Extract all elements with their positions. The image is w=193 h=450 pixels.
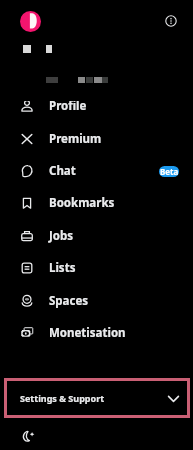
button[interactable]: Bookmarks	[0, 187, 193, 219]
staticText: Beta	[160, 166, 179, 177]
staticText: Settings & Support	[20, 392, 105, 404]
button[interactable]: Chat	[0, 155, 193, 187]
staticText: Profile	[49, 101, 87, 114]
button[interactable]: More options	[161, 11, 181, 31]
staticText: Monetisation	[49, 325, 126, 341]
button[interactable]: Monetisation	[0, 317, 193, 349]
button[interactable]: Account profile picture	[20, 11, 41, 32]
button[interactable]: Settings & Support	[4, 378, 190, 418]
staticText: Spaces	[49, 293, 89, 309]
staticText: Lists	[49, 260, 76, 276]
button[interactable]: Spaces	[0, 285, 193, 317]
staticText: Bookmarks	[49, 195, 115, 211]
button[interactable]: Dark mode	[22, 431, 34, 443]
staticText: Chat	[49, 163, 76, 179]
button[interactable]: Premium	[0, 123, 193, 155]
button[interactable]: Lists	[0, 252, 193, 284]
staticText: Jobs	[49, 228, 74, 244]
button[interactable]: Profile	[0, 101, 193, 122]
button[interactable]: Jobs	[0, 220, 193, 252]
staticText: Premium	[49, 131, 102, 147]
